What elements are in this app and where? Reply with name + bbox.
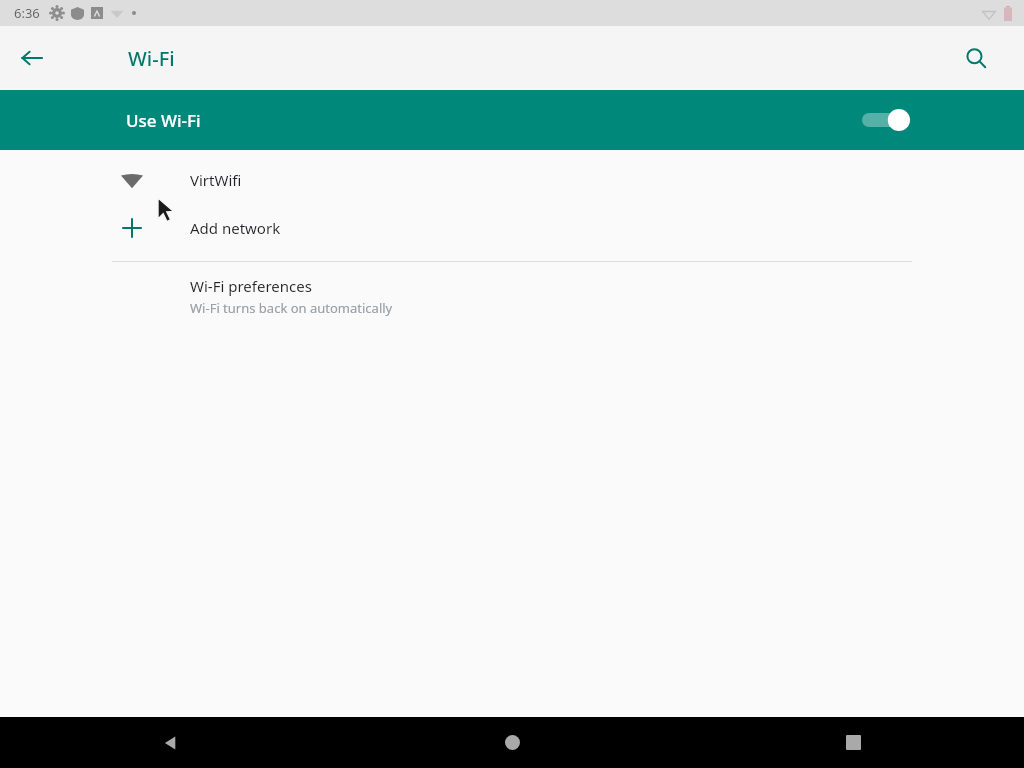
staticText: Wi-Fi turns back on automatically (190, 299, 393, 317)
staticText: Wi-Fi preferences (190, 276, 312, 296)
button[interactable]: Use Wi-Fi (0, 90, 1024, 150)
staticText: VirtWifi (190, 170, 242, 190)
staticText: 6:36 (14, 4, 40, 22)
button[interactable]: Back (0, 717, 342, 768)
staticText: Wi-Fi (128, 45, 175, 72)
button[interactable]: Use Wi-Fi toggle (860, 105, 912, 135)
button[interactable]: Recent apps (683, 717, 1024, 768)
button[interactable]: Back (8, 34, 56, 82)
button[interactable]: Home (342, 717, 683, 768)
button[interactable]: Wi-Fi preferences (0, 262, 1024, 331)
button[interactable]: Add network (0, 204, 1024, 252)
staticText: Use Wi-Fi (126, 109, 201, 132)
button[interactable]: Search (956, 38, 996, 78)
button[interactable]: VirtWifi (0, 156, 1024, 204)
staticText: Add network (190, 218, 281, 238)
